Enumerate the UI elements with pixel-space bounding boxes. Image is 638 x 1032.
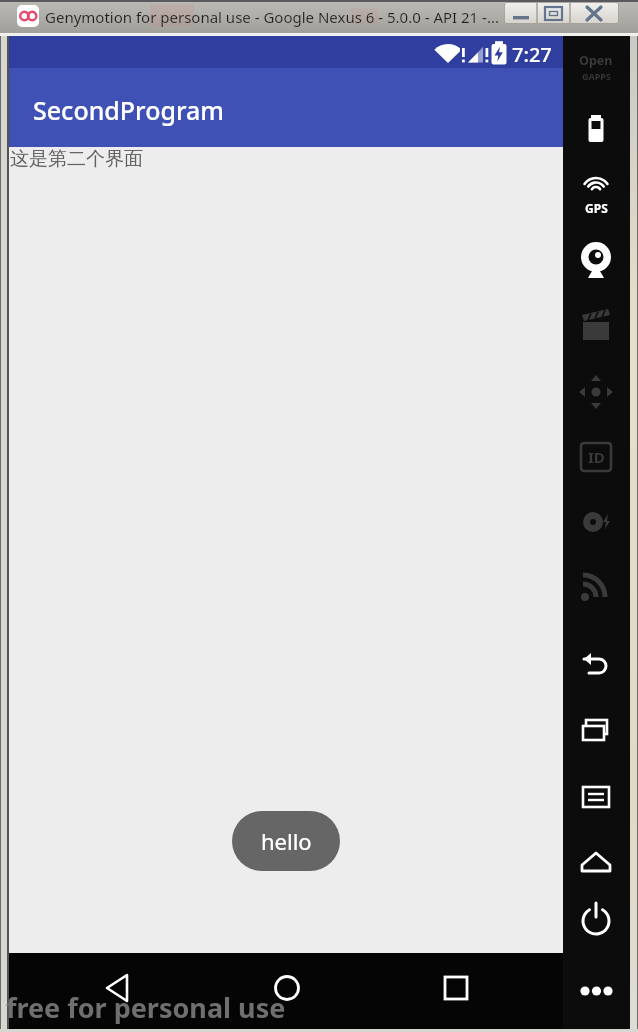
button[interactable]	[432, 964, 480, 1012]
staticText: GAPPS	[582, 70, 611, 82]
button[interactable]	[567, 562, 625, 610]
button[interactable]: GPS	[567, 172, 625, 220]
button[interactable]	[567, 895, 625, 943]
button[interactable]	[567, 236, 625, 284]
button[interactable]	[94, 964, 142, 1012]
button[interactable]	[567, 642, 625, 690]
button[interactable]	[567, 368, 625, 416]
button[interactable]: Open	[567, 48, 625, 88]
button[interactable]	[504, 2, 537, 24]
staticText: Genymotion for personal use - Google Nex…	[45, 7, 501, 27]
button[interactable]	[567, 302, 625, 350]
staticText: 这是第二个界面	[10, 147, 143, 171]
button[interactable]	[567, 707, 625, 755]
button[interactable]	[567, 773, 625, 821]
button[interactable]	[570, 2, 619, 24]
staticText: free for personal use	[6, 989, 286, 1026]
button[interactable]: ID	[567, 433, 625, 481]
staticText: SecondProgram	[33, 93, 224, 127]
staticText: ID	[588, 447, 605, 467]
button[interactable]	[567, 108, 625, 156]
staticText: Open	[579, 52, 613, 69]
button[interactable]	[567, 498, 625, 546]
staticText: 7:27	[512, 41, 552, 68]
staticText: GPS	[585, 200, 608, 216]
button[interactable]	[263, 964, 311, 1012]
button[interactable]	[567, 838, 625, 886]
staticText: hello	[261, 826, 312, 856]
button[interactable]	[537, 2, 570, 24]
button[interactable]	[567, 967, 625, 1015]
